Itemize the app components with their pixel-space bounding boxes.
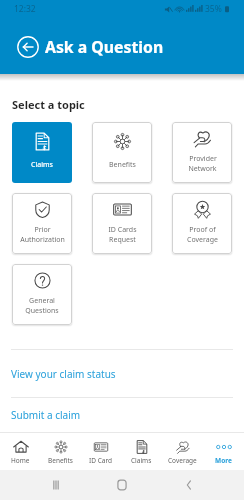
- staticText: Request: [109, 235, 136, 245]
- button[interactable]: Prior: [12, 193, 72, 254]
- staticText: More: [215, 456, 232, 465]
- staticText: Network: [188, 164, 217, 174]
- staticText: Select a topic: [12, 97, 85, 112]
- staticText: 12:32: [14, 3, 36, 15]
- staticText: Proof of: [189, 225, 216, 235]
- staticText: Home: [11, 456, 30, 465]
- staticText: Questions: [25, 306, 59, 316]
- staticText: Provider: [189, 154, 217, 164]
- staticText: Ask a Question: [45, 36, 164, 58]
- staticText: Claims: [31, 160, 53, 170]
- button[interactable]: Benefits: [92, 122, 152, 183]
- button[interactable]: Coverage: [162, 433, 203, 470]
- staticText: Submit a claim: [11, 408, 81, 422]
- button[interactable]: Claims: [121, 433, 162, 470]
- staticText: View your claim status: [11, 367, 116, 381]
- button[interactable]: Home: [0, 433, 40, 470]
- button[interactable]: ID Card: [80, 433, 121, 470]
- staticText: Prior: [34, 225, 51, 235]
- button[interactable]: Claims: [12, 122, 72, 183]
- staticText: ID Card: [89, 456, 112, 465]
- button[interactable]: View your claim status: [0, 349, 244, 397]
- staticText: Coverage: [168, 456, 197, 465]
- button[interactable]: Benefits: [40, 433, 80, 470]
- button[interactable]: Recent apps: [45, 474, 67, 496]
- staticText: Coverage: [187, 235, 218, 245]
- button[interactable]: Submit a claim: [0, 397, 244, 432]
- button[interactable]: ID Cards: [92, 193, 152, 254]
- button[interactable]: Back: [178, 474, 200, 496]
- button[interactable]: Back: [14, 33, 41, 60]
- staticText: 35%: [205, 3, 222, 15]
- staticText: Benefits: [48, 456, 73, 465]
- button[interactable]: Home: [111, 474, 133, 496]
- staticText: General: [29, 296, 55, 306]
- button[interactable]: More: [203, 433, 244, 470]
- staticText: Authorization: [20, 235, 65, 245]
- button[interactable]: Provider: [172, 122, 232, 183]
- staticText: Benefits: [109, 160, 136, 170]
- staticText: ID Cards: [108, 225, 137, 235]
- button[interactable]: General: [12, 264, 72, 325]
- button[interactable]: Proof of: [172, 193, 232, 254]
- staticText: Claims: [131, 456, 152, 465]
